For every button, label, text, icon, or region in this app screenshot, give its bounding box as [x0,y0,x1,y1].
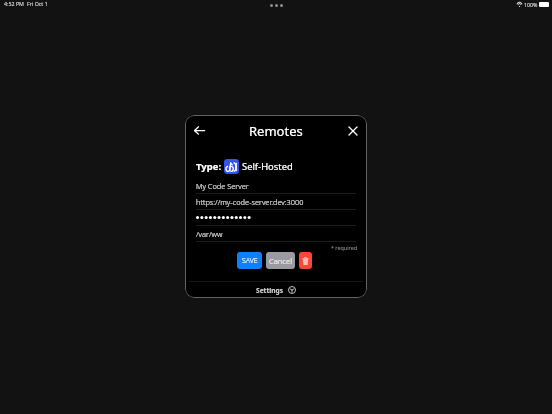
button[interactable]: Back [189,120,210,141]
button[interactable]: Close [342,120,363,141]
staticText: Cancel [269,256,292,266]
button[interactable]: SAVE [237,252,262,269]
button[interactable]: Delete [299,252,312,269]
staticText: My Code Server [196,181,249,191]
staticText: Fri Oct 1 [27,0,48,7]
staticText: Settings [256,286,284,295]
staticText: 100% [524,1,538,8]
button[interactable]: Settings [185,282,367,298]
staticText: 4:52 PM [4,0,24,7]
staticText: https://my-code-server.dev:3000 [196,197,304,207]
staticText: Self-Hosted [242,160,293,173]
button[interactable]: Cancel [266,252,295,269]
staticText: * required [331,244,358,251]
staticText: Type: [196,160,222,173]
staticText: Remotes [249,122,303,140]
staticText: /var/ww [196,229,223,239]
staticText: SAVE [242,256,258,265]
